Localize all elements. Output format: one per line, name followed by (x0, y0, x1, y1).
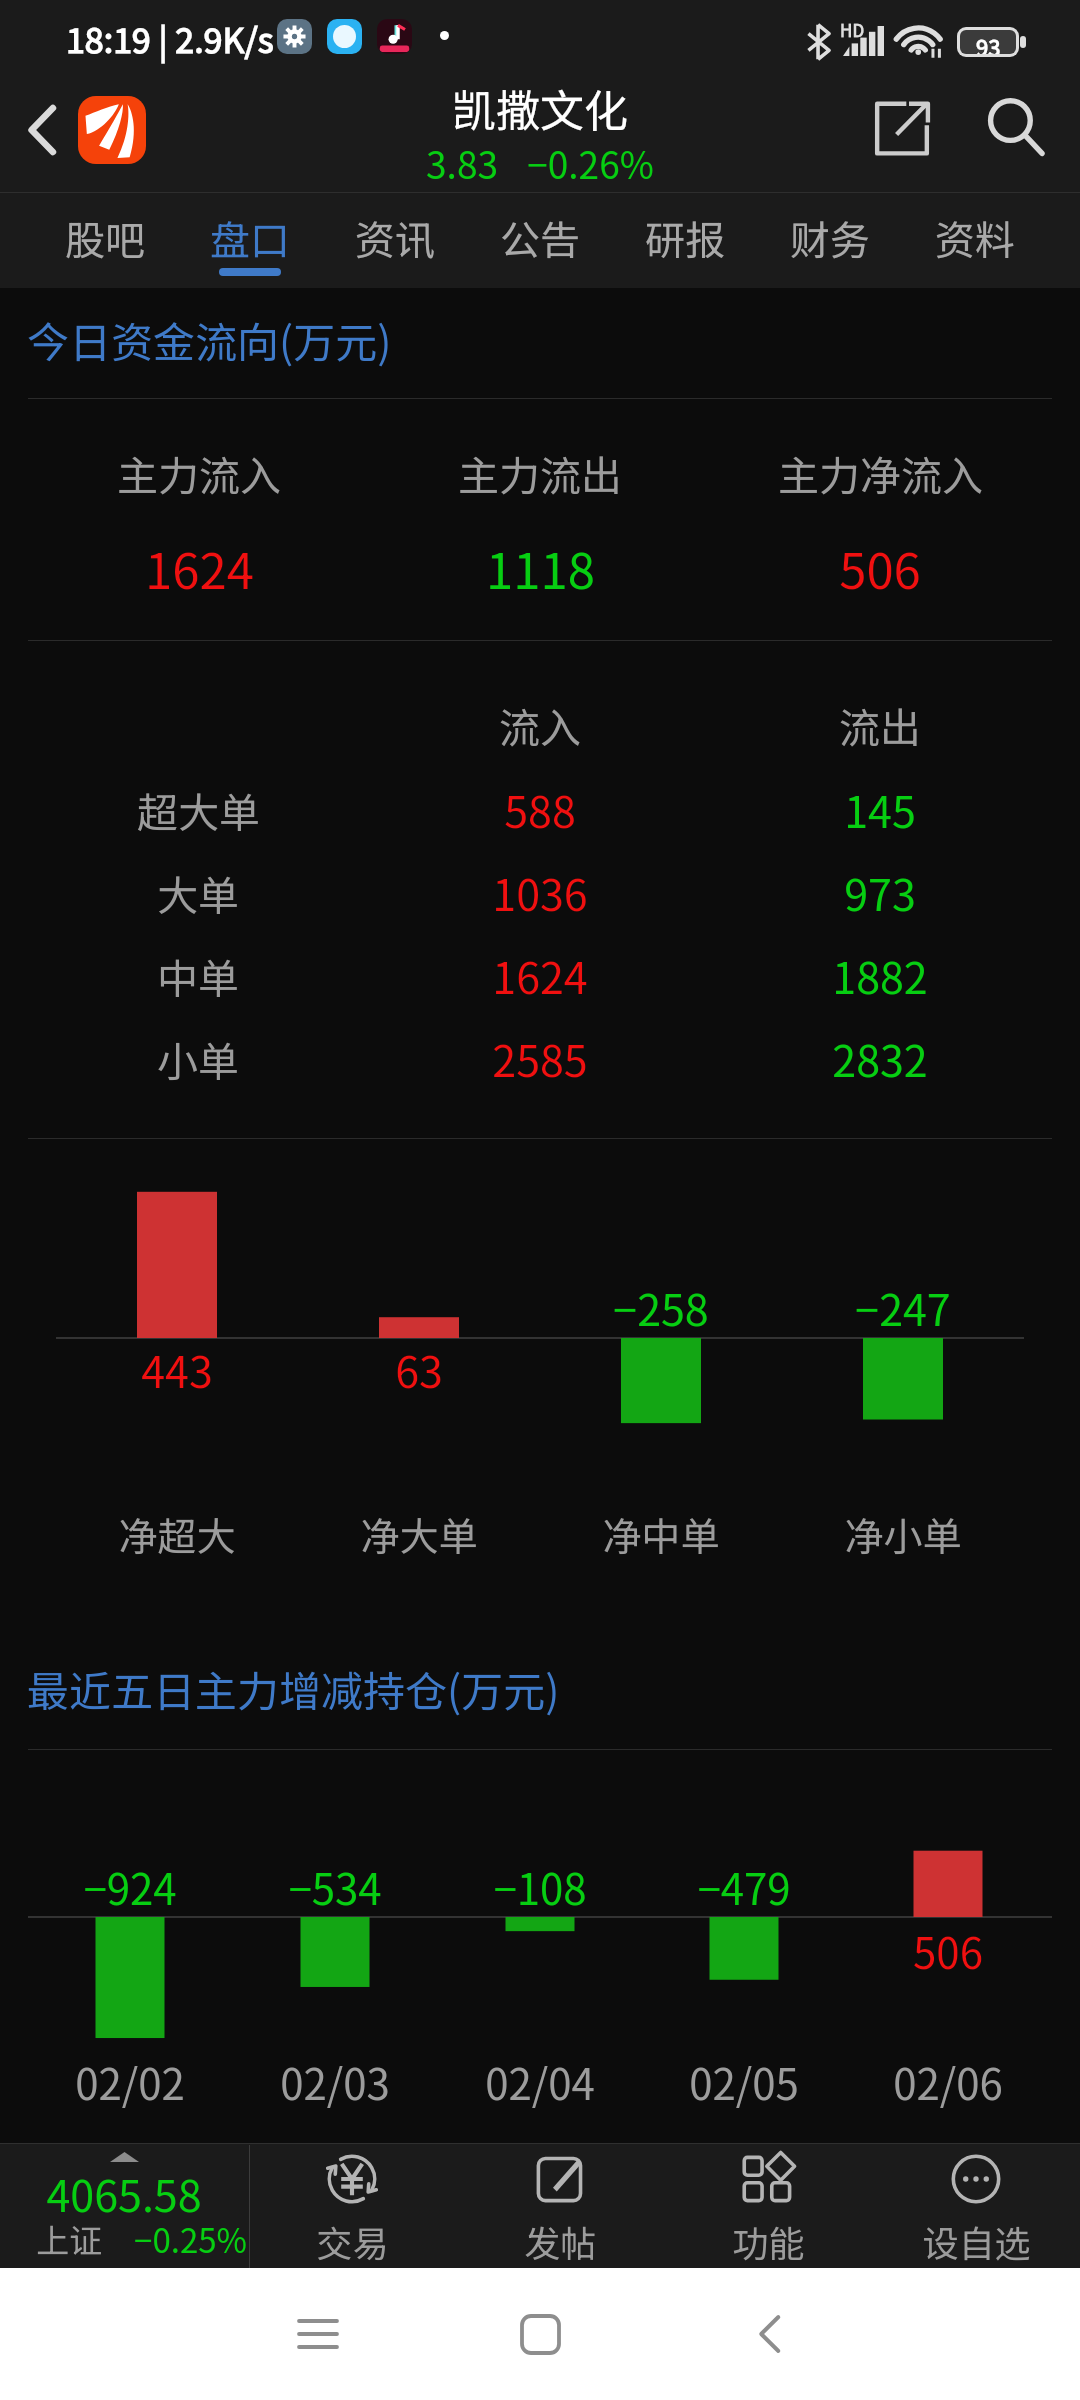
staticText: HD (840, 17, 865, 42)
button[interactable]: 资讯 (323, 192, 467, 288)
staticText: −534 (288, 1856, 382, 1917)
staticText: 18:19 | 2.9K/s (66, 14, 274, 63)
button[interactable]: 财务 (758, 192, 902, 288)
staticText: 超大单 (137, 780, 260, 839)
staticText: 净中单 (602, 1506, 720, 1562)
staticText: 设自选 (922, 2215, 1031, 2267)
staticText: 净小单 (844, 1506, 962, 1562)
staticText: 4065.58 (46, 2162, 202, 2224)
button[interactable] (248, 2143, 456, 2268)
staticText: −108 (493, 1856, 587, 1917)
staticText: 02/04 (485, 2051, 595, 2112)
staticText: −0.26% (527, 136, 654, 190)
staticText: 净超大 (118, 1506, 236, 1562)
staticText: 流入 (499, 695, 581, 754)
staticText: 财务 (790, 209, 870, 267)
button[interactable] (664, 2143, 872, 2268)
staticText: 主力流出 (458, 443, 622, 502)
button[interactable]: Search (978, 90, 1054, 166)
staticText: 1118 (486, 532, 595, 603)
button[interactable]: 盘口 (178, 192, 322, 288)
staticText: 973 (844, 861, 916, 923)
staticText: 大单 (157, 863, 239, 922)
staticText: 资料 (935, 209, 1015, 267)
staticText: −247 (855, 1276, 951, 1338)
button[interactable]: Shanghai index (0, 2143, 249, 2268)
button[interactable] (456, 2143, 664, 2268)
staticText: 资讯 (355, 209, 435, 267)
staticText: 凯撒文化 (452, 76, 628, 140)
staticText: 2832 (832, 1027, 928, 1089)
staticText: 2585 (492, 1027, 588, 1089)
staticText: 交易 (316, 2215, 389, 2267)
staticText: 净大单 (360, 1506, 478, 1562)
button[interactable]: Home (440, 2268, 640, 2400)
staticText: 506 (839, 532, 921, 603)
staticText: 1624 (145, 532, 254, 603)
staticText: 公告 (500, 209, 580, 267)
staticText: 3.83 (426, 136, 498, 190)
staticText: −0.25% (134, 2215, 247, 2263)
button[interactable] (872, 2143, 1080, 2268)
staticText: 1624 (492, 944, 588, 1006)
button[interactable]: 公告 (468, 192, 612, 288)
staticText: 93 (976, 30, 1001, 54)
button[interactable]: Eastmoney home (78, 96, 146, 164)
staticText: 63 (395, 1338, 443, 1400)
staticText: 中单 (157, 946, 239, 1005)
staticText: 145 (844, 778, 916, 840)
staticText: 02/03 (280, 2051, 390, 2112)
staticText: 02/02 (75, 2051, 185, 2112)
staticText: 主力净流入 (778, 443, 983, 502)
staticText: 盘口 (210, 209, 290, 267)
staticText: −924 (83, 1856, 177, 1917)
staticText: −479 (697, 1856, 791, 1917)
staticText: 股吧 (65, 209, 145, 267)
staticText: 1882 (832, 944, 928, 1006)
staticText: 发帖 (524, 2215, 597, 2267)
staticText: 588 (504, 778, 576, 840)
staticText: −258 (613, 1276, 709, 1338)
staticText: 上证 (36, 2215, 102, 2263)
staticText: 02/06 (893, 2051, 1003, 2112)
staticText: 1036 (492, 861, 588, 923)
staticText: 最近五日主力增减持仓(万元) (27, 1658, 560, 1719)
staticText: 功能 (732, 2215, 805, 2267)
staticText: 02/05 (689, 2051, 799, 2112)
staticText: 小单 (157, 1029, 239, 1088)
staticText: 主力流入 (117, 443, 281, 502)
staticText: 研报 (645, 209, 725, 267)
button[interactable]: Back (670, 2268, 870, 2400)
button[interactable]: Recent apps (218, 2268, 418, 2400)
button[interactable]: 资料 (903, 192, 1047, 288)
staticText: 流出 (839, 695, 921, 754)
button[interactable]: Back (4, 92, 80, 168)
button[interactable]: 股吧 (33, 192, 177, 288)
staticText: 今日资金流向(万元) (27, 309, 392, 370)
button[interactable]: 研报 (613, 192, 757, 288)
staticText: 443 (141, 1338, 213, 1400)
staticText: 506 (913, 1920, 983, 1981)
button[interactable]: Share (866, 92, 938, 164)
